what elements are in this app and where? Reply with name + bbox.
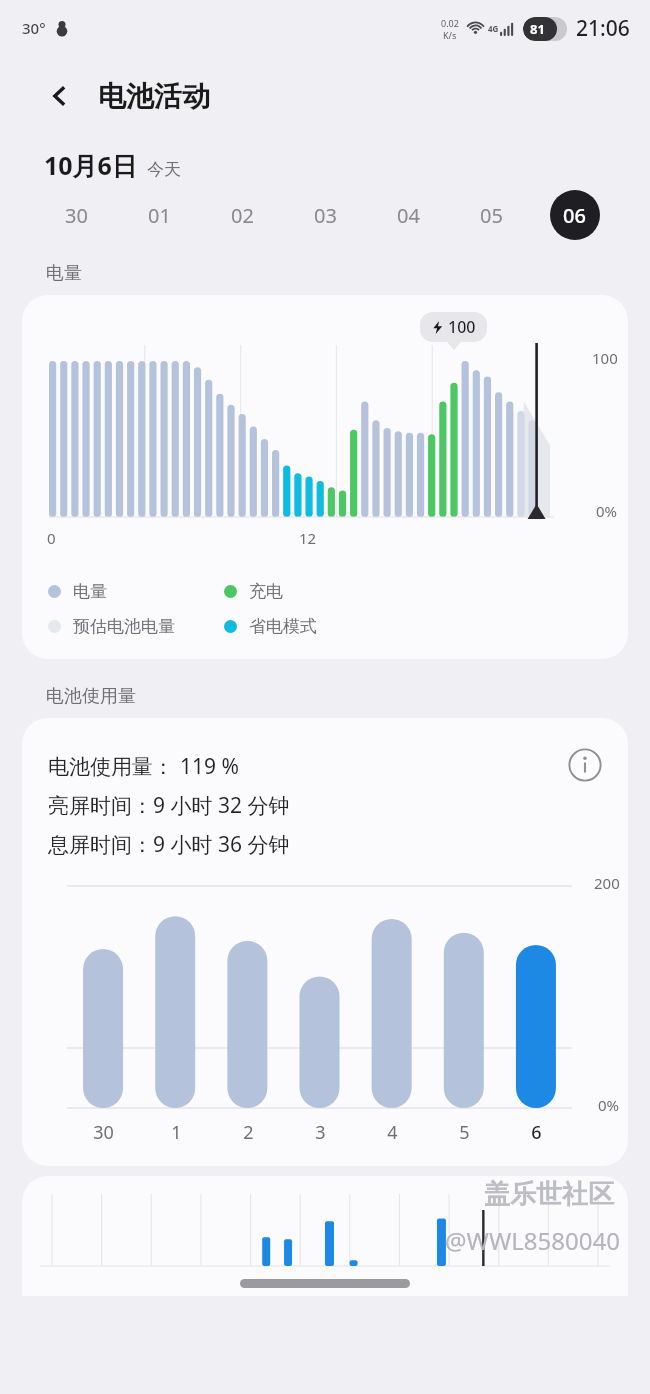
- button[interactable]: 100: [22, 295, 628, 659]
- staticText: 10月6日: [44, 148, 137, 182]
- staticText: 亮屏时间：9 小时 32 分钟: [48, 791, 290, 820]
- staticText: 电量: [46, 262, 82, 285]
- staticText: 2: [243, 1120, 254, 1145]
- button[interactable]: 30: [34, 184, 118, 246]
- staticText: 02: [231, 202, 254, 229]
- staticText: 盖乐世社区: [484, 1178, 614, 1211]
- staticText: 息屏时间：9 小时 36 分钟: [48, 830, 290, 859]
- staticText: 12: [299, 528, 317, 548]
- staticText: 0.02: [441, 17, 459, 29]
- staticText: 4: [387, 1120, 398, 1145]
- staticText: 21:06: [576, 14, 630, 43]
- staticText: 预估电池电量: [73, 616, 175, 637]
- staticText: 6: [531, 1120, 542, 1145]
- staticText: 4G: [488, 23, 499, 34]
- staticText: 电池使用量：: [48, 754, 174, 780]
- staticText: 今天: [147, 159, 181, 180]
- staticText: 30: [93, 1120, 114, 1145]
- staticText: 1: [171, 1120, 182, 1145]
- staticText: 30°: [22, 18, 46, 38]
- button[interactable]: 06: [533, 184, 616, 246]
- staticText: 04: [397, 202, 420, 229]
- staticText: 03: [314, 202, 337, 229]
- staticText: 05: [480, 202, 503, 229]
- button[interactable]: 04: [367, 184, 450, 246]
- button[interactable]: 电池使用量：: [22, 718, 628, 1166]
- staticText: K/s: [443, 29, 457, 41]
- staticText: 0: [47, 528, 56, 548]
- staticText: 200: [594, 873, 620, 893]
- staticText: 充电: [249, 581, 283, 602]
- staticText: 电池使用量: [46, 685, 136, 708]
- staticText: 100: [592, 348, 618, 368]
- button[interactable]: Info: [564, 744, 606, 786]
- button[interactable]: 01: [118, 184, 201, 246]
- staticText: 119 %: [180, 752, 239, 781]
- button[interactable]: 02: [201, 184, 284, 246]
- staticText: 5: [459, 1120, 470, 1145]
- button[interactable]: 05: [450, 184, 533, 246]
- button[interactable]: 03: [284, 184, 367, 246]
- staticText: 省电模式: [249, 616, 317, 637]
- button[interactable]: Back: [38, 74, 82, 118]
- staticText: 电池活动: [98, 79, 210, 114]
- staticText: @WWL8580040: [445, 1224, 620, 1257]
- staticText: 电量: [73, 581, 107, 602]
- staticText: 0%: [598, 1095, 620, 1115]
- staticText: 06: [563, 202, 586, 229]
- staticText: 01: [148, 202, 171, 229]
- staticText: 3: [315, 1120, 326, 1145]
- staticText: 100: [448, 316, 476, 338]
- staticText: 0%: [596, 501, 618, 521]
- staticText: 81: [530, 20, 545, 38]
- staticText: 30: [65, 202, 88, 229]
